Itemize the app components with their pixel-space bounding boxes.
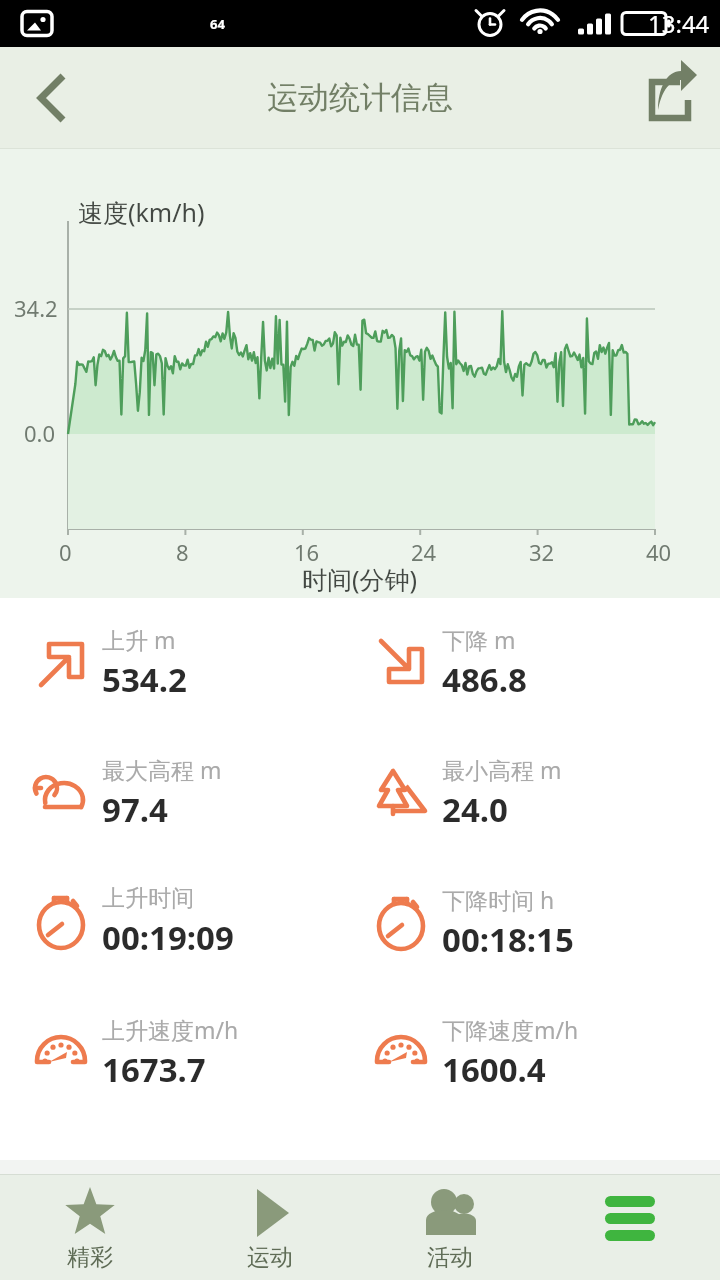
staticText: 精彩 (67, 1243, 113, 1272)
button[interactable]: More menu (540, 1175, 720, 1280)
staticText: 13:44 (648, 7, 710, 40)
staticText: 活动 (427, 1243, 473, 1272)
staticText: 0 (59, 537, 72, 567)
staticText: 下降 m (442, 624, 516, 655)
staticText: 24 (411, 537, 437, 567)
button[interactable]: 最大高程 m (0, 754, 360, 832)
staticText: 16 (294, 537, 320, 567)
staticText: 486.8 (442, 657, 527, 702)
staticText: 下降时间 h (442, 884, 555, 915)
staticText: 最大高程 m (102, 754, 222, 785)
button[interactable]: 精彩 (0, 1175, 180, 1280)
staticText: 34.2 (14, 293, 58, 323)
staticText: 64 (210, 15, 225, 33)
staticText: 00:19:09 (102, 915, 234, 960)
button[interactable]: 运动 (180, 1175, 360, 1280)
staticText: 上升速度m/h (102, 1014, 239, 1045)
staticText: 时间(分钟) (302, 562, 418, 596)
button[interactable]: Back (0, 48, 100, 148)
staticText: 534.2 (102, 657, 187, 702)
button[interactable]: 上升时间 (0, 884, 360, 960)
button[interactable]: 最小高程 m (360, 754, 720, 832)
staticText: 8 (176, 537, 189, 567)
staticText: 32 (529, 537, 555, 567)
button[interactable]: 上升速度m/h (0, 1014, 360, 1092)
staticText: 24.0 (442, 787, 508, 832)
staticText: 上升时间 (102, 884, 194, 913)
staticText: 上升 m (102, 624, 176, 655)
staticText: 下降速度m/h (442, 1014, 579, 1045)
staticText: 00:18:15 (442, 917, 574, 962)
staticText: 1673.7 (102, 1047, 206, 1092)
staticText: 最小高程 m (442, 754, 562, 785)
staticText: 运动统计信息 (267, 78, 453, 117)
staticText: 运动 (247, 1243, 293, 1272)
button[interactable]: Share (620, 48, 720, 148)
button[interactable]: 下降 m (360, 624, 720, 702)
button[interactable]: 活动 (360, 1175, 540, 1280)
button[interactable]: 下降速度m/h (360, 1014, 720, 1092)
button[interactable]: 上升 m (0, 624, 360, 702)
staticText: 40 (646, 537, 672, 567)
staticText: 97.4 (102, 787, 168, 832)
staticText: 0.0 (24, 418, 56, 448)
button[interactable]: 下降时间 h (360, 884, 720, 962)
staticText: 1600.4 (442, 1047, 546, 1092)
staticText: 速度(km/h) (78, 195, 205, 229)
